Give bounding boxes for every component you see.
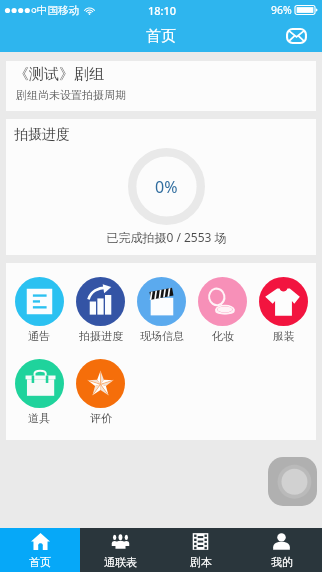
- button[interactable]: 服装: [253, 277, 314, 343]
- staticText: 96%: [271, 3, 292, 17]
- staticText: 18:10: [148, 3, 177, 18]
- staticText: 化妆: [212, 329, 234, 343]
- staticText: 我的: [271, 555, 293, 569]
- staticText: 《测试》剧组: [14, 65, 104, 84]
- button[interactable]: 我的: [241, 528, 322, 572]
- staticText: 服装: [273, 329, 295, 343]
- button[interactable]: 通联表: [80, 528, 160, 572]
- staticText: 拍摄进度: [14, 126, 70, 144]
- staticText: 剧组尚未设置拍摄周期: [16, 88, 126, 102]
- button[interactable]: Messages: [281, 21, 311, 51]
- button[interactable]: 剧本: [160, 528, 241, 572]
- button[interactable]: 道具: [8, 359, 70, 425]
- button[interactable]: 化妆: [192, 277, 253, 343]
- staticText: 拍摄进度: [79, 329, 123, 343]
- button[interactable]: 通告: [8, 277, 70, 343]
- staticText: 现场信息: [140, 329, 184, 343]
- staticText: 通联表: [104, 555, 137, 569]
- button[interactable]: 拍摄进度: [70, 277, 131, 343]
- button[interactable]: 现场信息: [131, 277, 192, 343]
- staticText: 中国移动: [37, 4, 79, 17]
- button[interactable]: 《测试》剧组: [6, 61, 316, 111]
- staticText: 评价: [90, 411, 112, 425]
- staticText: 首页: [146, 27, 176, 46]
- button[interactable]: 评价: [70, 359, 131, 425]
- staticText: 0%: [155, 176, 178, 198]
- staticText: 剧本: [190, 555, 212, 569]
- staticText: 首页: [29, 555, 51, 569]
- button[interactable]: 首页: [0, 528, 80, 572]
- staticText: 道具: [28, 411, 50, 425]
- staticText: 已完成拍摄0 / 2553 场: [106, 229, 227, 245]
- button[interactable]: Record: [268, 457, 317, 506]
- staticText: 通告: [28, 329, 50, 343]
